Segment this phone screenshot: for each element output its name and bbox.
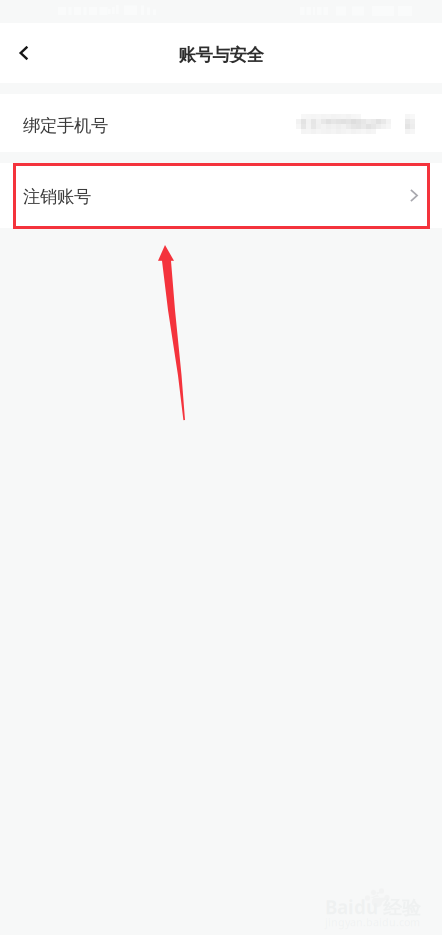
staticText: 绑定手机号 (23, 115, 108, 136)
button[interactable]: Back (0, 23, 46, 68)
button[interactable]: 绑定手机号 (0, 94, 442, 152)
staticText: 账号与安全 (178, 44, 263, 66)
staticText: Baidu 经验 (325, 895, 421, 919)
staticText: 注销账号 (23, 186, 91, 207)
button[interactable]: 注销账号 (0, 163, 442, 228)
